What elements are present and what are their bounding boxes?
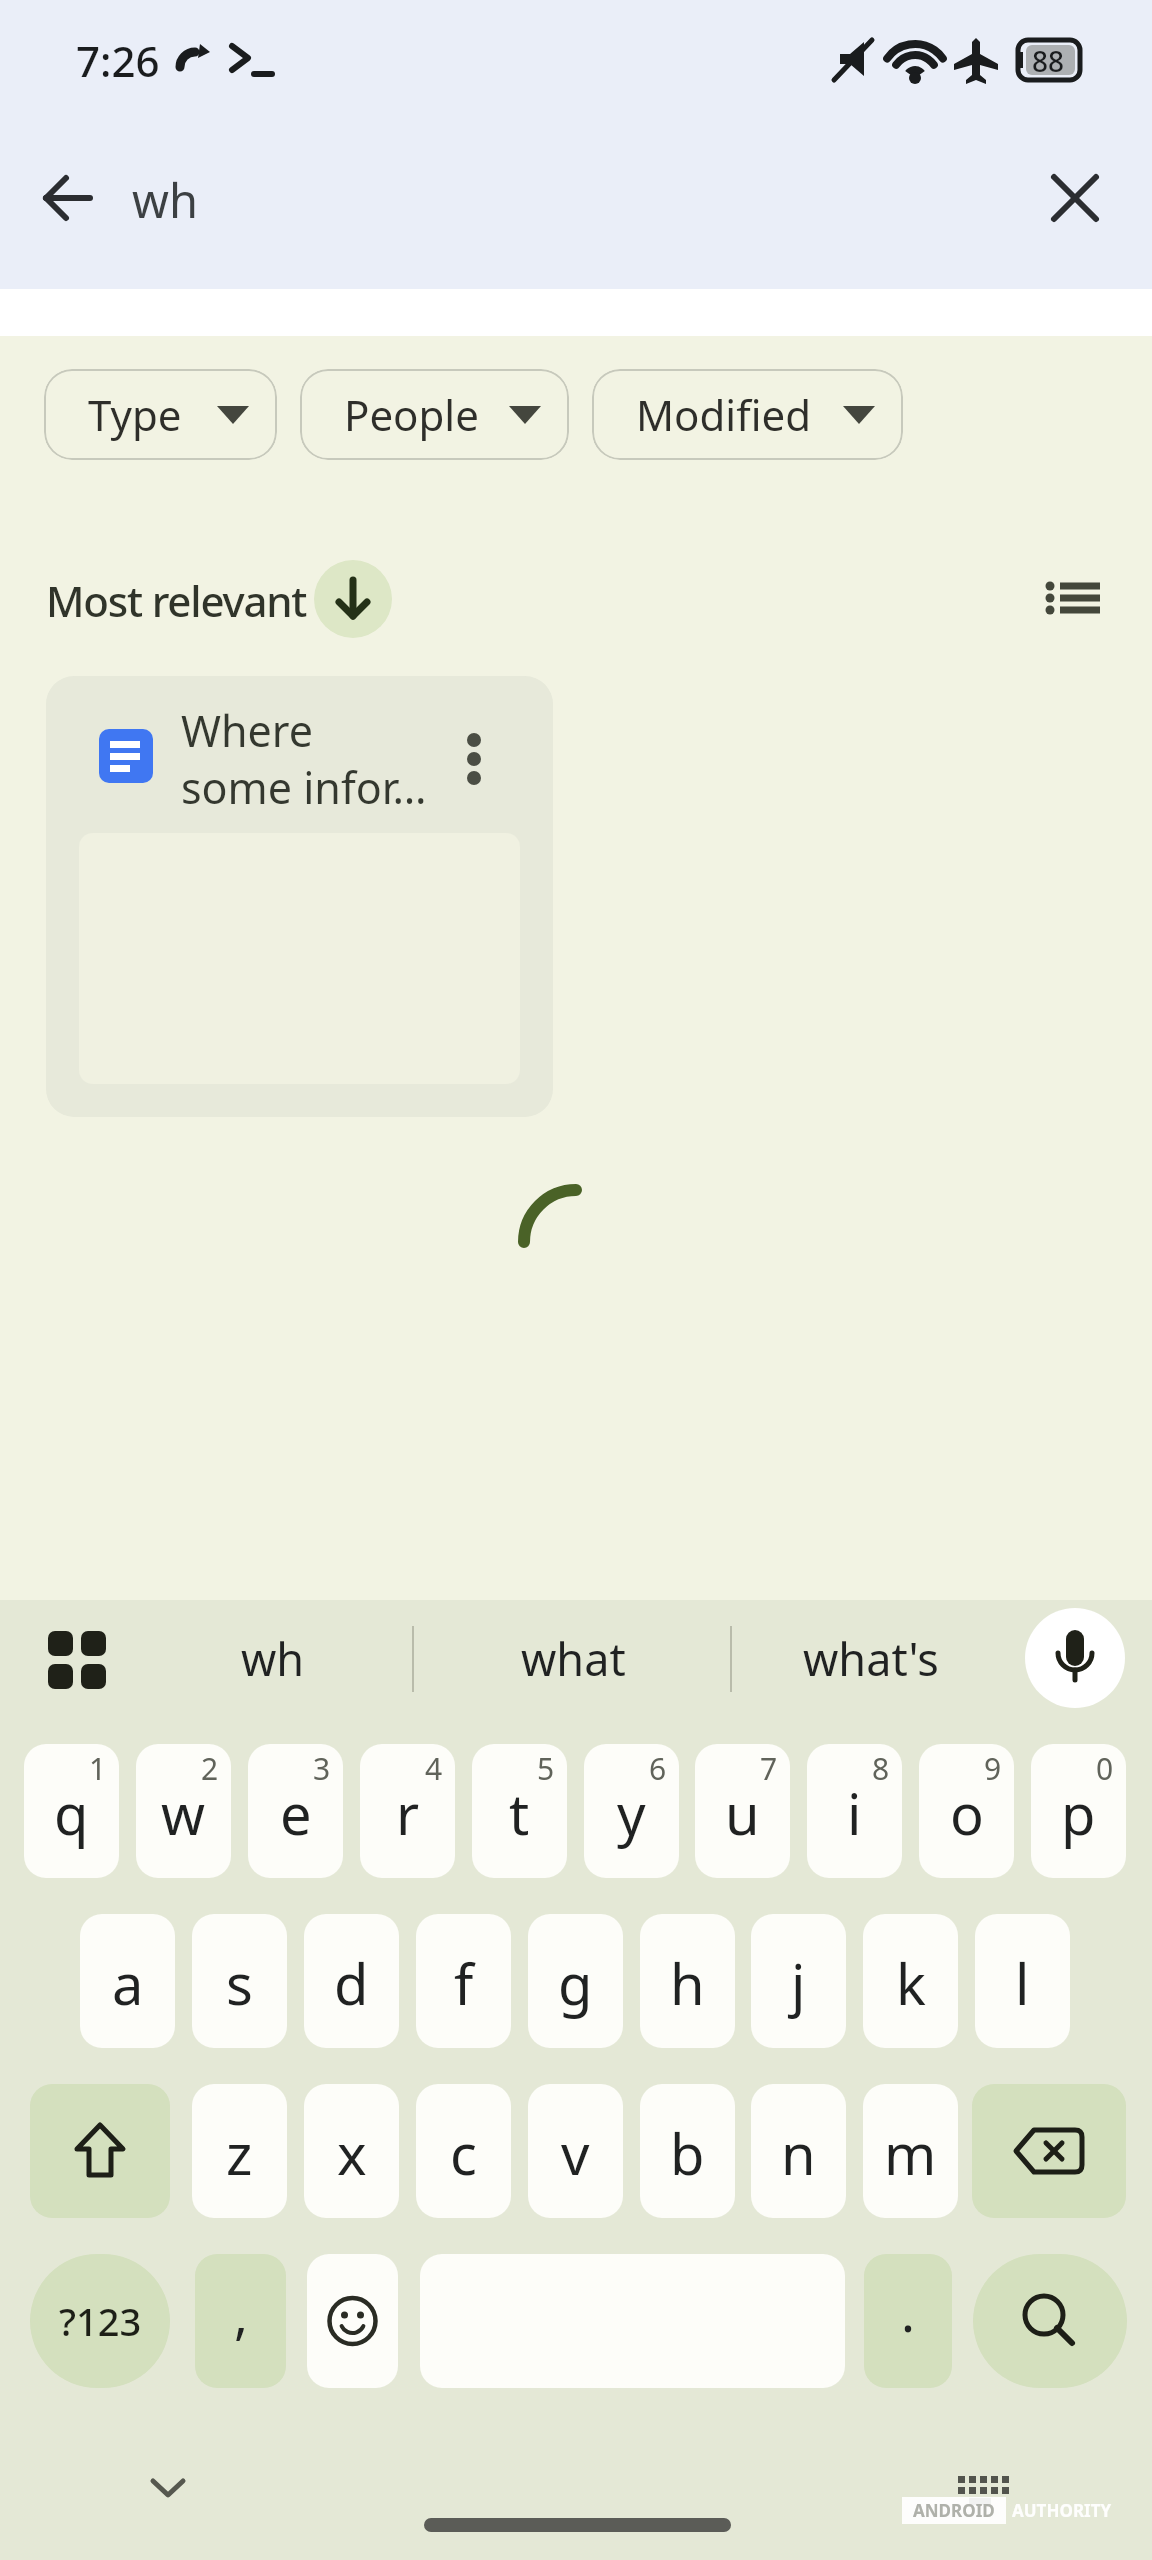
button[interactable]: b (640, 2084, 735, 2218)
staticText: b (670, 2115, 705, 2191)
staticText: u (725, 1775, 760, 1851)
staticText: 7 (760, 1748, 778, 1789)
button[interactable]: what's (766, 1626, 976, 1690)
staticText: z (226, 2115, 253, 2191)
button[interactable] (1039, 162, 1111, 234)
staticText: q (54, 1775, 89, 1851)
button[interactable]: r (360, 1744, 455, 1878)
staticText: a (112, 1945, 144, 2021)
button[interactable]: x (304, 2084, 399, 2218)
staticText: some infor… (181, 758, 427, 817)
button[interactable]: t (472, 1744, 567, 1878)
staticText: what's (803, 1628, 939, 1689)
staticText: y (617, 1775, 646, 1851)
staticText: 5 (537, 1748, 555, 1789)
button[interactable]: h (640, 1914, 735, 2048)
button[interactable]: m (863, 2084, 958, 2218)
button[interactable]: o (919, 1744, 1014, 1878)
button[interactable]: Modified (592, 369, 903, 460)
button[interactable]: what (468, 1626, 678, 1690)
button[interactable]: e (248, 1744, 343, 1878)
staticText: v (561, 2115, 590, 2191)
button[interactable]: . (864, 2254, 952, 2388)
button[interactable]: i (807, 1744, 902, 1878)
staticText: n (781, 2115, 816, 2191)
button[interactable]: People (300, 369, 569, 460)
staticText: what (521, 1628, 626, 1689)
staticText: 3 (313, 1748, 331, 1789)
staticText: w (161, 1775, 206, 1851)
button[interactable] (1025, 1608, 1125, 1708)
button[interactable]: q (24, 1744, 119, 1878)
button[interactable]: j (751, 1914, 846, 2048)
staticText: Where (181, 701, 313, 760)
staticText: x (337, 2115, 367, 2191)
button[interactable]: y (584, 1744, 679, 1878)
staticText: Most relevant (46, 572, 307, 629)
staticText: t (509, 1775, 530, 1851)
staticText: m (884, 2115, 937, 2191)
button[interactable] (972, 2084, 1126, 2218)
staticText: o (950, 1775, 984, 1851)
staticText: wh (241, 1628, 305, 1689)
staticText: c (450, 2115, 477, 2191)
staticText: . (901, 2276, 915, 2347)
button[interactable] (1034, 573, 1110, 625)
button[interactable] (140, 2462, 196, 2510)
staticText: 4 (425, 1748, 443, 1789)
button[interactable] (44, 1627, 110, 1693)
staticText: ANDROID (913, 2499, 995, 2522)
button[interactable]: g (528, 1914, 623, 2048)
button[interactable]: Type (44, 369, 277, 460)
staticText: 1 (89, 1748, 107, 1789)
staticText: Modified (636, 386, 811, 443)
button[interactable]: n (751, 2084, 846, 2218)
button[interactable]: l (975, 1914, 1070, 2048)
staticText: j (791, 1945, 806, 2021)
button[interactable] (30, 162, 102, 234)
staticText: 88 (1032, 42, 1065, 80)
staticText: r (396, 1775, 420, 1851)
button[interactable]: wh (168, 1626, 378, 1690)
staticText: ?123 (59, 2295, 142, 2347)
button[interactable]: z (192, 2084, 287, 2218)
button[interactable]: v (528, 2084, 623, 2218)
staticText: 8 (872, 1748, 890, 1789)
staticText: 7:26 (76, 32, 160, 89)
staticText: People (344, 386, 479, 443)
staticText: , (234, 2278, 248, 2349)
button[interactable]: f (416, 1914, 511, 2048)
staticText: i (847, 1775, 862, 1851)
staticText: h (670, 1945, 705, 2021)
staticText: 6 (649, 1748, 667, 1789)
button[interactable] (30, 2084, 170, 2218)
button[interactable]: d (304, 1914, 399, 2048)
button[interactable]: ?123 (30, 2254, 170, 2388)
staticText: 2 (201, 1748, 219, 1789)
button[interactable] (446, 724, 502, 796)
button[interactable]: u (695, 1744, 790, 1878)
staticText: f (454, 1945, 474, 2021)
button[interactable] (307, 2254, 398, 2388)
staticText: g (558, 1945, 593, 2021)
button[interactable]: k (863, 1914, 958, 2048)
staticText: AUTHORITY (1012, 2499, 1112, 2522)
button[interactable]: Where (46, 676, 553, 1117)
button[interactable]: a (80, 1914, 175, 2048)
staticText: p (1061, 1775, 1096, 1851)
staticText: e (280, 1775, 312, 1851)
button[interactable]: s (192, 1914, 287, 2048)
staticText: k (896, 1945, 926, 2021)
staticText: l (1015, 1945, 1030, 2021)
button[interactable] (973, 2254, 1127, 2388)
button[interactable]: p (1031, 1744, 1126, 1878)
staticText: Type (88, 386, 182, 443)
button[interactable]: c (416, 2084, 511, 2218)
staticText: s (226, 1945, 253, 2021)
button[interactable]: w (136, 1744, 231, 1878)
staticText: 9 (984, 1748, 1002, 1789)
staticText: d (334, 1945, 369, 2021)
button[interactable] (314, 560, 392, 638)
button[interactable]: , (195, 2254, 286, 2388)
